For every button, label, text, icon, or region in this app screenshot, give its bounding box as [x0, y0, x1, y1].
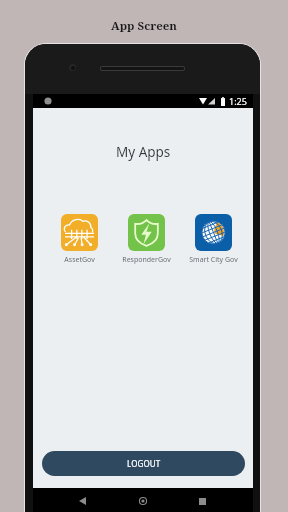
staticText: ResponderGov — [122, 255, 171, 265]
staticText: My Apps — [116, 143, 171, 161]
staticText: 1:25 — [229, 95, 247, 107]
staticText: App Screen — [111, 18, 178, 34]
staticText: Smart City Gov — [189, 255, 238, 265]
button[interactable]: Recent apps — [188, 491, 216, 511]
button[interactable]: Home — [129, 491, 157, 511]
button[interactable]: LOGOUT — [42, 451, 245, 476]
staticText: LOGOUT — [127, 458, 161, 469]
staticText: AssetGov — [64, 255, 95, 265]
button[interactable]: Back — [68, 491, 96, 511]
button[interactable]: AssetGov — [51, 214, 107, 265]
button[interactable]: Smart City Gov — [185, 214, 241, 265]
button[interactable]: ResponderGov — [118, 214, 174, 265]
